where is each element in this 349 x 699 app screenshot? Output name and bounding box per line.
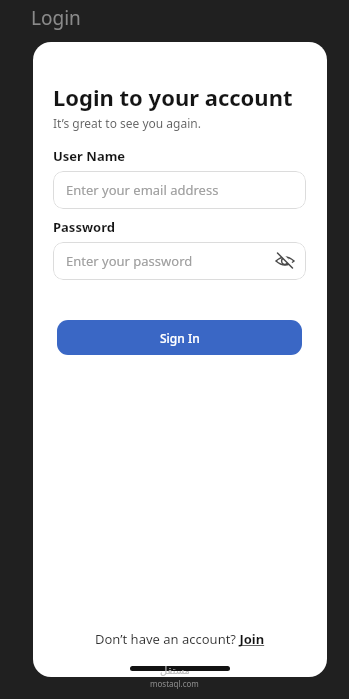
staticText: mostaql.com [150, 678, 199, 689]
staticText: Enter your password [66, 252, 193, 270]
button[interactable]: Don’t have an account? Join [95, 630, 265, 648]
staticText: User Name [53, 147, 126, 165]
staticText: It’s great to see you again. [53, 115, 201, 131]
staticText: Password [53, 218, 115, 236]
staticText: Login [31, 5, 81, 31]
button[interactable]: Enter your email address [53, 171, 306, 209]
staticText: Enter your email address [66, 181, 219, 199]
staticText: Sign In [160, 330, 200, 346]
button[interactable]: Sign In [57, 320, 302, 355]
staticText: Login to your account [53, 82, 293, 112]
staticText: Don’t have an account? Join [95, 630, 265, 648]
button[interactable]: Enter your password [53, 242, 306, 280]
staticText: مستقل [160, 665, 190, 677]
